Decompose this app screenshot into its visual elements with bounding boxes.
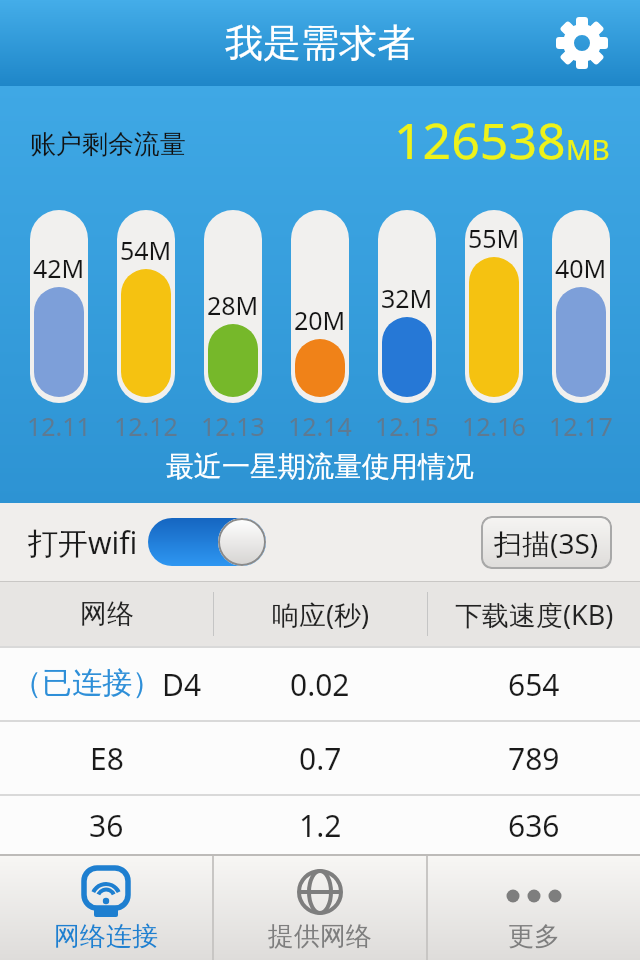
staticText: 打开wifi [28,522,138,563]
staticText: 32M [381,281,433,315]
staticText: 636 [508,805,560,846]
button[interactable]: 36 [0,796,640,854]
staticText: 网络 [80,597,134,631]
staticText: 更多 [508,920,560,953]
staticText: 12.12 [114,409,178,443]
staticText: 12.16 [462,409,526,443]
button[interactable] [556,17,608,69]
staticText: 提供网络 [268,920,372,953]
staticText: 0.7 [299,738,342,779]
staticText: E8 [90,738,124,779]
staticText: 28M [207,288,259,322]
staticText: 54M [120,233,172,267]
button[interactable] [148,518,266,566]
staticText: 账户剩余流量 [30,128,186,161]
staticText: 最近一星期流量使用情况 [166,449,474,484]
staticText: 55M [468,221,520,255]
staticText: MB [566,130,610,168]
staticText: 40M [555,251,607,285]
button[interactable]: 更多 [428,856,640,960]
staticText: 654 [508,664,560,705]
staticText: 12.14 [288,409,352,443]
staticText: 12.15 [375,409,439,443]
staticText: 网络连接 [54,920,158,953]
staticText: 下载速度(KB) [455,596,614,633]
button[interactable]: （已连接） [0,648,640,720]
staticText: 扫描(3S) [494,524,599,562]
staticText: 36 [89,805,124,846]
staticText: 12.13 [201,409,265,443]
staticText: 20M [294,303,346,337]
staticText: 响应(秒) [272,596,370,633]
staticText: 42M [33,251,85,285]
staticText: 12.17 [549,409,613,443]
staticText: （已连接） [12,664,162,702]
staticText: 我是需求者 [225,19,415,67]
button[interactable]: 提供网络 [214,856,426,960]
staticText: 12.11 [27,409,91,443]
button[interactable]: 网络连接 [0,856,212,960]
staticText: 789 [508,738,560,779]
button[interactable]: 扫描(3S) [481,516,612,569]
staticText: 1.2 [299,805,342,846]
staticText: D4 [162,664,202,705]
staticText: 0.02 [290,664,350,705]
button[interactable]: E8 [0,722,640,794]
staticText: 126538 [394,106,566,174]
